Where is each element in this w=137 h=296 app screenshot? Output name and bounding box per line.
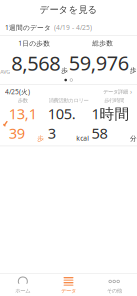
staticText: ›	[128, 87, 132, 96]
staticText: AVG	[0, 68, 10, 75]
staticText: 歩行時間	[104, 97, 124, 104]
staticText: 13,139	[9, 104, 37, 143]
staticText: 総歩数	[92, 39, 113, 47]
staticText: 歩数	[18, 97, 28, 104]
button[interactable]: その他	[91, 274, 137, 296]
staticText: 歩	[130, 66, 137, 74]
staticText: データを見る	[39, 4, 97, 15]
staticText: 1日の歩数	[18, 39, 50, 48]
staticText: ホーム	[15, 287, 30, 294]
button[interactable]: 4/25(火)	[0, 84, 137, 146]
staticText: 4/25(火)	[5, 87, 30, 96]
staticText: 105.3	[48, 104, 76, 143]
staticText: 8,568	[11, 50, 60, 76]
staticText: 1時間58	[91, 104, 129, 143]
staticText: 52	[102, 268, 118, 288]
button[interactable]: 4/21(金)	[0, 291, 137, 296]
staticText: データ詳細	[103, 88, 128, 95]
button[interactable]: データ	[46, 274, 91, 296]
staticText: その他	[107, 287, 122, 294]
staticText: 消費活動カロリー	[48, 97, 88, 104]
staticText: kcal	[76, 134, 89, 143]
staticText: 分	[119, 280, 126, 288]
staticText: 1週間のデータ	[5, 23, 51, 32]
staticText: 分	[130, 134, 137, 143]
staticText: 59,976	[69, 49, 129, 76]
staticText: 6,195	[1, 268, 37, 288]
button[interactable]: ホーム	[0, 274, 46, 296]
staticText: 歩	[37, 134, 44, 143]
staticText: 53.7	[48, 268, 76, 288]
staticText: データ	[61, 287, 76, 294]
button[interactable]: 4/22(土)	[0, 249, 137, 291]
staticText: (4/19 - 4/25)	[54, 23, 92, 32]
staticText: 歩	[61, 66, 68, 75]
